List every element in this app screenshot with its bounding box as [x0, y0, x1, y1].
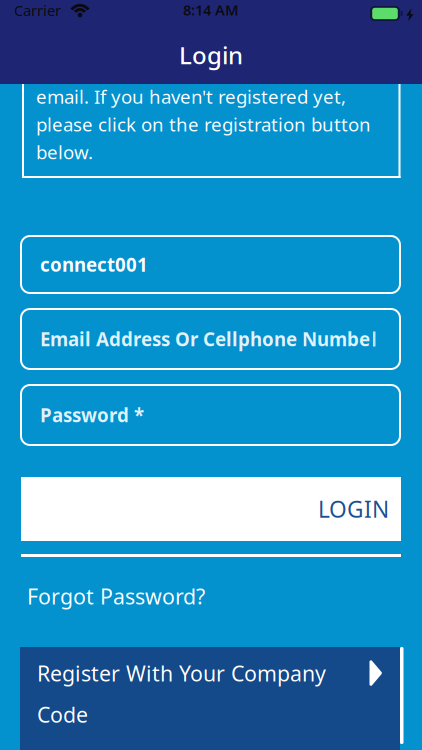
button[interactable]: connect001	[21, 236, 400, 293]
staticText: Register With Your Company	[37, 659, 326, 687]
staticText: email. If you haven't registered yet,	[36, 84, 346, 109]
staticText: connect001	[40, 252, 148, 277]
button[interactable]: Email Address Or Cellphone Numbe	[21, 309, 400, 369]
staticText: Email Address Or Cellphone Numbe	[40, 327, 370, 351]
button[interactable]: Forgot Password?	[27, 582, 205, 610]
staticText: below.	[36, 140, 93, 164]
staticText: 8:14 AM	[183, 0, 239, 19]
staticText: Forgot Password?	[27, 582, 205, 610]
staticText: Carrier	[14, 0, 61, 20]
staticText: Code	[37, 700, 88, 729]
button[interactable]: LOGIN	[21, 477, 401, 541]
staticText: Login	[179, 39, 243, 71]
button[interactable]: Register With Your Company	[20, 647, 400, 750]
staticText: Password *	[40, 403, 144, 427]
button[interactable]: Password *	[21, 385, 400, 445]
staticText: LOGIN	[318, 494, 389, 524]
staticText: please click on the registration button	[36, 112, 371, 137]
